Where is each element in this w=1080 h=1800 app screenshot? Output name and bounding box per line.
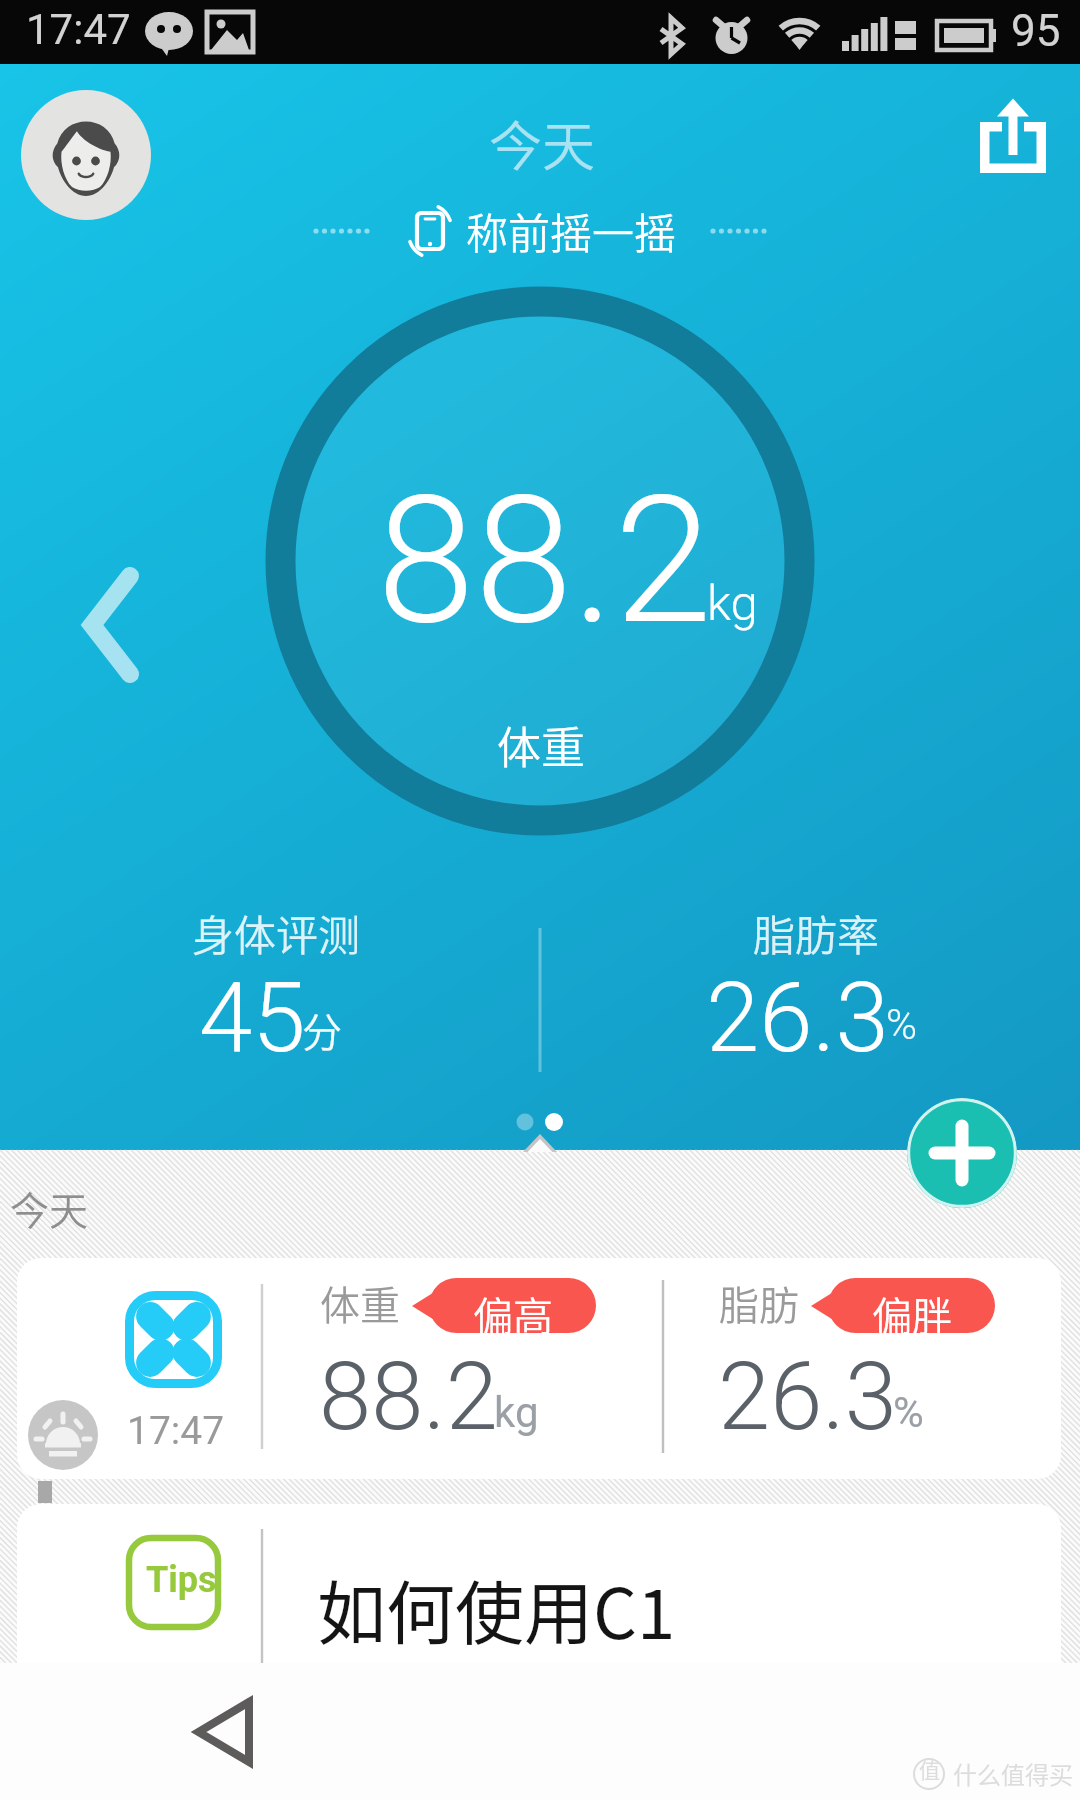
staticText: 偏胖	[872, 1285, 952, 1343]
button[interactable]: Profile	[21, 90, 151, 220]
staticText: 88.2	[319, 1342, 498, 1452]
staticText: 偏高	[473, 1285, 553, 1343]
staticText: 今天	[10, 1180, 89, 1236]
button[interactable]: Back	[180, 1683, 280, 1783]
staticText: 95	[1011, 5, 1061, 57]
staticText: 什么值得买	[953, 1756, 1073, 1791]
button[interactable]: Tips	[17, 1504, 1061, 1704]
button[interactable]: Previous day	[72, 552, 152, 697]
staticText: %	[893, 1388, 924, 1437]
staticText: 17:47	[127, 1408, 225, 1454]
staticText: 值	[919, 1754, 940, 1784]
staticText: %	[886, 1000, 918, 1049]
staticText: 26.3	[706, 962, 889, 1075]
staticText: 26.3	[718, 1342, 897, 1452]
staticText: 脂肪	[719, 1274, 799, 1332]
staticText: 如何使用C1	[317, 1559, 676, 1659]
staticText: 今天	[489, 105, 595, 182]
staticText: kg	[494, 1388, 539, 1437]
staticText: 88.2	[377, 458, 712, 664]
staticText: 体重	[497, 713, 585, 777]
button[interactable]: Share	[959, 82, 1069, 192]
staticText: 脂肪率	[753, 902, 880, 963]
staticText: 45	[199, 962, 306, 1075]
staticText: 称前摇一摇	[466, 200, 677, 261]
staticText: kg	[707, 575, 758, 632]
button[interactable]: Add measurement	[907, 1098, 1017, 1208]
staticText: 分	[302, 1001, 342, 1059]
button[interactable]: 17:47	[17, 1258, 1061, 1479]
staticText: 17:47	[26, 5, 131, 54]
staticText: 体重	[320, 1274, 400, 1332]
staticText: 身体评测	[192, 902, 361, 963]
staticText: Tips	[146, 1559, 217, 1601]
